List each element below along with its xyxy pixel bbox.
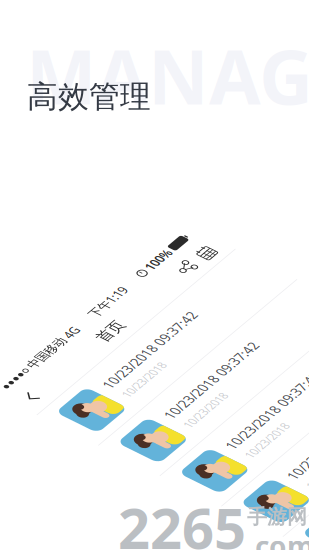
button[interactable]: 10/23/2018 09:37:42 <box>0 65 309 148</box>
staticText: 10/23/2018 09:37:42 <box>88 498 255 521</box>
button[interactable]: 10/23/2018 09:37:42 <box>0 397 309 480</box>
staticText: 10/23/2018 09:37:42 <box>88 332 255 355</box>
staticText: 10/23/2018 <box>88 442 162 461</box>
staticText: .com <box>247 527 309 550</box>
staticText: 10/23/2018 09:37:42 <box>88 249 255 272</box>
staticText: 10/23/2018 <box>88 525 162 544</box>
staticText: 手游网 <box>247 505 307 529</box>
staticText: MANAG <box>26 26 309 125</box>
staticText: 2265 <box>118 490 246 550</box>
button[interactable]: 10/23/2018 09:37:42 <box>0 314 309 397</box>
staticText: 10/23/2018 <box>88 276 162 295</box>
button[interactable]: 10/23/2018 09:37:42 <box>0 231 309 314</box>
staticText: 10/23/2018 <box>88 359 162 378</box>
staticText: 10/23/2018 09:37:42 <box>88 415 255 438</box>
button[interactable]: 10/23/2018 09:37:42 <box>0 480 309 550</box>
staticText: 高效管理 <box>27 78 151 116</box>
staticText: 10/23/2018 <box>88 110 162 129</box>
staticText: 10/23/2018 09:37:42 <box>88 83 255 106</box>
